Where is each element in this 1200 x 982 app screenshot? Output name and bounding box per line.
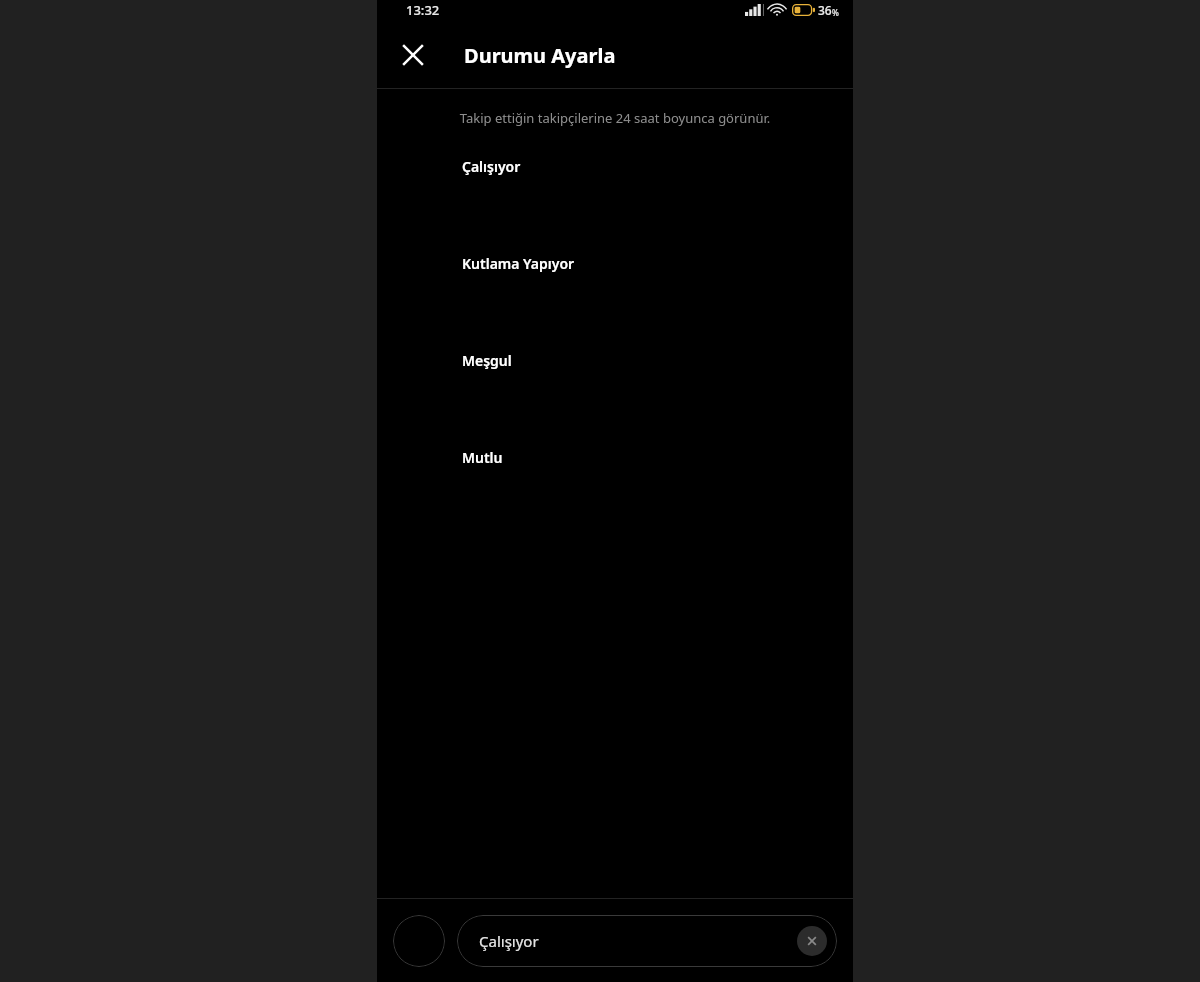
button[interactable]: Mutlu bbox=[377, 448, 853, 545]
button[interactable]: Meşgul bbox=[377, 351, 853, 448]
staticText: Kutlama Yapıyor bbox=[462, 254, 575, 273]
staticText: Durumu Ayarla bbox=[464, 42, 616, 69]
staticText: Takip ettiğin takipçilerine 24 saat boyu… bbox=[397, 109, 833, 127]
button[interactable]: Kutlama Yapıyor bbox=[377, 254, 853, 351]
staticText: 36 bbox=[818, 2, 832, 18]
staticText: Meşgul bbox=[462, 351, 512, 370]
button[interactable]: Çalışıyor bbox=[377, 157, 853, 254]
staticText: 13:32 bbox=[406, 1, 440, 19]
staticText: Çalışıyor bbox=[479, 931, 539, 951]
button[interactable]: Profil fotoğrafı bbox=[393, 915, 445, 967]
button[interactable]: Kapat bbox=[391, 33, 435, 77]
staticText: Mutlu bbox=[462, 448, 503, 467]
staticText: % bbox=[832, 7, 839, 18]
staticText: Çalışıyor bbox=[462, 157, 521, 176]
button[interactable]: Temizle bbox=[797, 926, 827, 956]
button[interactable]: Çalışıyor bbox=[457, 915, 837, 967]
